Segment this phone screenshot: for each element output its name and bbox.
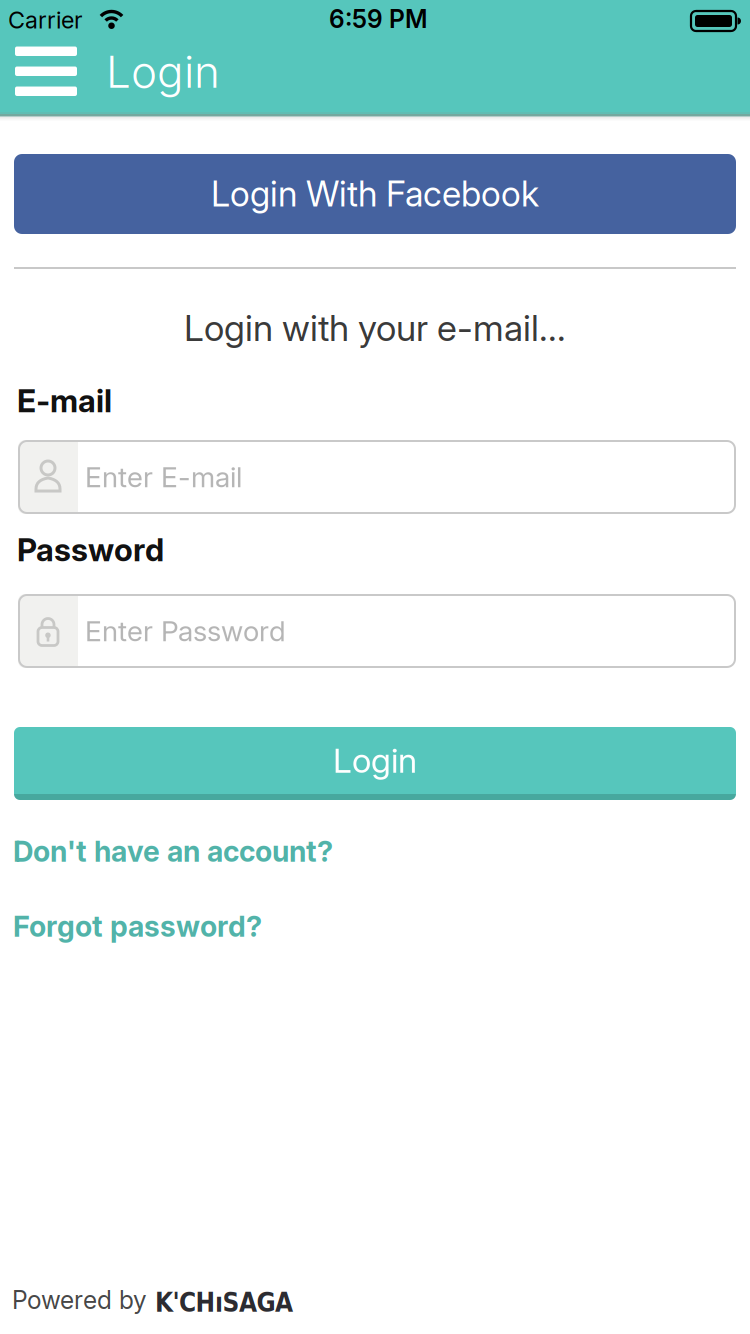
staticText: K'CHıSAGA bbox=[155, 1287, 293, 1318]
staticText: Password bbox=[17, 531, 164, 569]
button[interactable]: Enter E-mail bbox=[16, 438, 738, 516]
button[interactable]: Login With Facebook bbox=[14, 154, 736, 234]
staticText: Enter Password bbox=[85, 614, 286, 648]
staticText: Forgot password? bbox=[13, 909, 262, 944]
button[interactable]: Menu bbox=[15, 46, 77, 96]
button[interactable]: Forgot password? bbox=[13, 909, 262, 944]
button[interactable]: Login bbox=[14, 727, 736, 800]
staticText: 6:59 PM bbox=[329, 4, 427, 34]
staticText: Carrier bbox=[8, 6, 83, 34]
staticText: Login With Facebook bbox=[211, 173, 539, 215]
staticText: Don't have an account? bbox=[13, 834, 333, 869]
staticText: Login bbox=[106, 45, 220, 98]
staticText: Powered by bbox=[12, 1285, 147, 1315]
button[interactable]: Enter Password bbox=[16, 592, 738, 670]
staticText: Login with your e-mail... bbox=[184, 306, 566, 350]
staticText: Login bbox=[333, 740, 417, 781]
staticText: Enter E-mail bbox=[85, 460, 242, 494]
button[interactable]: Don't have an account? bbox=[13, 834, 333, 869]
staticText: E-mail bbox=[17, 382, 112, 420]
